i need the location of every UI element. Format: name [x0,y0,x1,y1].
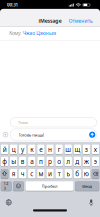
button[interactable]: р [46,157,54,166]
button[interactable]: я [10,169,17,179]
button[interactable]: щ [73,145,81,154]
button[interactable]: в [19,157,26,166]
button[interactable]: Shift [1,169,8,179]
staticText: с [28,165,35,183]
button[interactable]: з [83,145,90,154]
staticText: к [28,140,35,158]
button[interactable]: м [37,169,45,179]
staticText: 00:31 [1,0,24,11]
button[interactable]: п [37,157,45,166]
button[interactable]: Приложения [2,132,8,138]
button[interactable]: т [55,169,63,179]
staticText: й [1,140,9,158]
button[interactable]: к [28,145,36,154]
staticText: щ [71,140,83,158]
button[interactable]: ц [10,145,17,154]
staticText: ю [81,165,92,183]
button[interactable]: ф [1,157,8,166]
button[interactable]: Отменить [91,14,100,28]
button[interactable]: ы [10,157,17,166]
button[interactable]: э [92,157,99,166]
button[interactable]: Пробел [25,181,74,191]
staticText: ж [81,153,91,170]
button[interactable]: Диктовка [88,199,94,205]
staticText: р [46,153,54,170]
staticText: е [37,140,44,158]
button[interactable]: й [1,145,8,154]
staticText: а [28,153,35,170]
staticText: 123 [1,175,11,197]
button[interactable]: Delete [92,169,99,179]
staticText: ш [62,140,74,158]
staticText: э [92,153,99,170]
button[interactable]: Emoji [13,181,24,191]
staticText: ф [0,153,10,170]
button[interactable]: Чжао Цзюньхэ [0,26,64,40]
button[interactable]: ж [83,157,90,166]
button[interactable]: Ввод [75,181,99,191]
staticText: Отменить [91,14,100,28]
button[interactable]: ю [83,169,90,179]
button[interactable]: е [37,145,45,154]
button[interactable]: б [73,169,81,179]
staticText: б [73,165,81,183]
button[interactable]: ш [64,145,72,154]
button[interactable]: Отправить [89,132,95,138]
staticText: г [56,140,62,158]
button[interactable]: х [92,145,99,154]
staticText: Чжао Цзюньхэ [0,26,64,40]
staticText: н [46,140,54,158]
button[interactable]: у [19,145,26,154]
staticText: у [19,140,26,158]
staticText: м [36,165,46,183]
staticText: ы [9,153,19,170]
staticText: х [92,140,99,158]
staticText: ч [19,165,27,183]
staticText: ц [10,140,18,158]
staticText: ь [65,165,72,183]
button[interactable]: ч [19,169,26,179]
staticText: и [46,165,54,183]
staticText: Ввод [76,180,98,192]
button[interactable]: д [73,157,81,166]
button[interactable]: с [28,169,36,179]
button[interactable]: ь [64,169,72,179]
staticText: з [83,140,90,158]
button[interactable]: н [46,145,54,154]
button[interactable]: а [28,157,36,166]
button[interactable]: о [55,157,63,166]
button[interactable]: и [46,169,54,179]
button[interactable]: г [55,145,63,154]
button[interactable]: л [64,157,72,166]
button[interactable]: 123 [1,181,11,191]
staticText: Пробел [32,180,67,192]
staticText: п [37,153,45,170]
staticText: Готовь пищу [0,129,30,141]
staticText: т [56,165,62,183]
staticText: о [55,153,63,170]
staticText: д [73,153,81,170]
button[interactable]: Следующая клавиатура [6,199,12,205]
staticText: в [19,153,27,170]
staticText: л [64,153,72,170]
staticText: iMessage [26,14,74,28]
staticText: я [10,165,18,183]
